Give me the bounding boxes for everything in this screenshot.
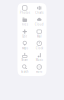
button[interactable]: Mail (32, 28, 46, 40)
button[interactable]: Files (17, 16, 32, 28)
staticText: Photos (20, 11, 30, 14)
staticText: Search (21, 70, 29, 73)
button[interactable]: Clock (32, 40, 46, 51)
button[interactable]: Cloud (32, 16, 46, 28)
staticText: Cloud (35, 23, 44, 26)
staticText: Charts (35, 11, 43, 14)
button[interactable]: Search (17, 63, 32, 75)
staticText: Maps (22, 46, 28, 50)
button[interactable]: Share (17, 51, 32, 63)
button[interactable]: Edit (17, 28, 32, 40)
button[interactable]: Photos (17, 4, 32, 16)
staticText: Clock (36, 46, 43, 50)
staticText: Files (22, 23, 28, 26)
button[interactable]: Charts (32, 4, 46, 16)
staticText: Share (21, 58, 28, 62)
button[interactable]: More (32, 63, 46, 75)
staticText: Music (36, 58, 43, 62)
staticText: Mail (37, 35, 42, 38)
staticText: Edit (22, 35, 27, 38)
button[interactable]: Music (32, 51, 46, 63)
staticText: More (36, 70, 43, 73)
button[interactable]: Maps (17, 40, 32, 51)
